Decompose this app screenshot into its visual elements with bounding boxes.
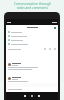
button[interactable] bbox=[6, 62, 58, 71]
button[interactable] bbox=[6, 42, 58, 46]
staticText: Communication through bbox=[14, 2, 51, 6]
staticText: tasks and comments bbox=[17, 6, 48, 10]
button[interactable] bbox=[6, 34, 58, 38]
button[interactable] bbox=[6, 38, 58, 42]
button[interactable] bbox=[6, 76, 58, 83]
button[interactable] bbox=[6, 30, 58, 34]
